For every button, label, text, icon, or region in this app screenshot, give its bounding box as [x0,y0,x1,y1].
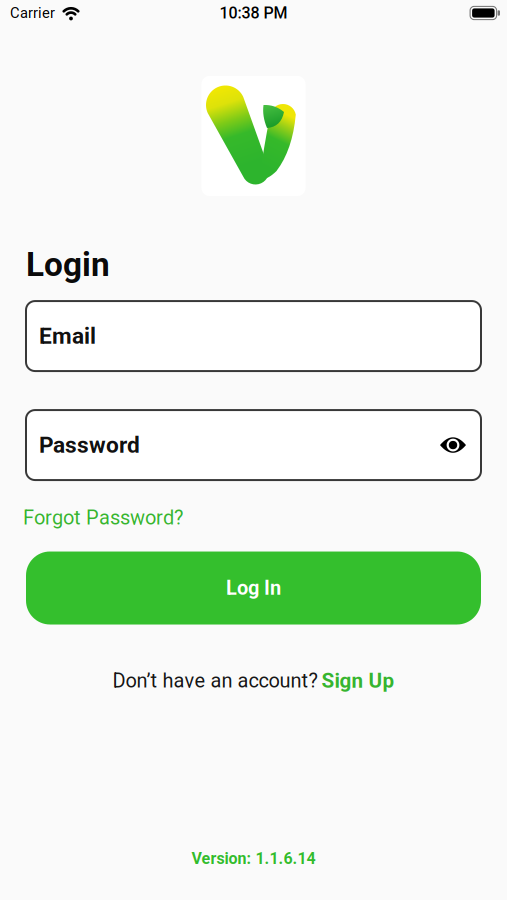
staticText: Password [39,432,140,458]
staticText: Version: 1.1.6.14 [191,849,315,868]
button[interactable]: Log In [26,551,481,624]
staticText: Sign Up [321,668,394,693]
staticText: Carrier [10,4,55,22]
button[interactable]: Email [26,301,481,371]
staticText: Email [39,323,96,349]
button[interactable]: Forgot Password? [23,506,183,529]
staticText: Login [26,245,110,284]
button[interactable]: Password [26,410,481,480]
staticText: Forgot Password? [23,506,183,529]
staticText: Log In [226,576,281,600]
button[interactable]: Sign Up [321,668,394,693]
staticText: Don’t have an account? [112,669,317,692]
staticText: 10:38 PM [219,4,287,22]
